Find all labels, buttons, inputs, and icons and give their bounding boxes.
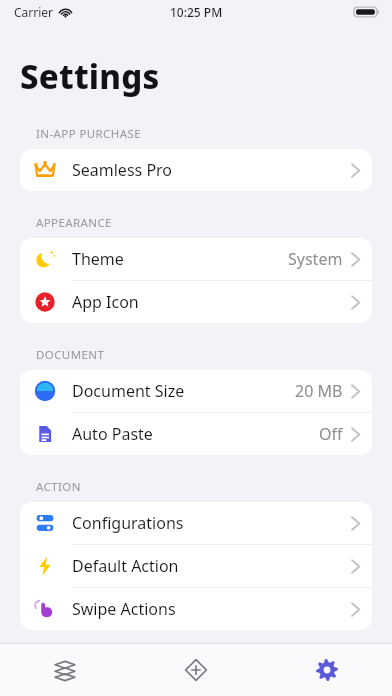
button[interactable]: Auto Paste: [20, 413, 372, 455]
staticText: 10:25 PM: [170, 4, 223, 20]
button[interactable]: Configurations: [20, 502, 372, 544]
staticText: Default Action: [72, 555, 179, 577]
button[interactable]: Swipe Actions: [20, 588, 372, 630]
staticText: IN-APP PURCHASE: [36, 126, 141, 142]
button[interactable]: App Icon: [20, 281, 372, 323]
button[interactable]: Document Size: [20, 370, 372, 412]
staticText: Auto Paste: [72, 423, 153, 445]
button[interactable]: Seamless Pro: [20, 149, 372, 191]
staticText: Carrier: [14, 4, 54, 20]
staticText: APPEARANCE: [36, 215, 112, 231]
staticText: Swipe Actions: [72, 598, 176, 620]
button[interactable]: Add: [130, 644, 261, 695]
button[interactable]: Default Action: [20, 545, 372, 587]
staticText: System: [288, 248, 343, 270]
staticText: Seamless Pro: [72, 159, 173, 181]
staticText: ACTION: [36, 479, 81, 495]
staticText: Theme: [72, 248, 124, 270]
staticText: Off: [319, 423, 343, 445]
staticText: DOCUMENT: [36, 347, 105, 363]
button[interactable]: Settings: [261, 644, 392, 695]
staticText: 20 MB: [295, 380, 343, 402]
button[interactable]: Theme: [20, 238, 372, 280]
staticText: Configurations: [72, 512, 184, 534]
staticText: Document Size: [72, 380, 185, 402]
button[interactable]: Layers: [0, 644, 130, 695]
staticText: App Icon: [72, 291, 139, 313]
staticText: Settings: [20, 54, 160, 99]
